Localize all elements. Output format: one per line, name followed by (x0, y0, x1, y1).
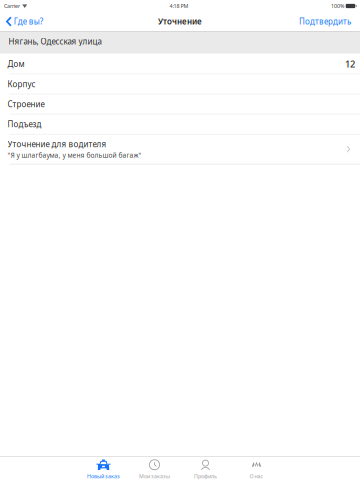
staticText: Профиль (194, 473, 217, 480)
button[interactable]: Мои заказы (129, 457, 180, 480)
staticText: Подъезд (7, 119, 41, 129)
button[interactable]: О нас (231, 457, 282, 480)
button[interactable]: Корпус (0, 74, 360, 94)
button[interactable]: Дом (0, 54, 360, 74)
staticText: Подтвердить (299, 16, 351, 27)
staticText: Корпус (7, 79, 35, 89)
staticText: Мои заказы (139, 473, 170, 480)
staticText: "Я у шлагбаума, у меня большой багаж" (7, 151, 141, 160)
staticText: Уточнение для водителя (7, 139, 106, 149)
staticText: О нас (249, 473, 263, 480)
button[interactable]: Подтвердить (290, 12, 360, 31)
staticText: Строение (7, 99, 44, 109)
button[interactable]: Профиль (180, 457, 231, 480)
button[interactable]: Подъезд (0, 115, 360, 134)
button[interactable]: Где вы? (0, 12, 49, 31)
button[interactable]: Строение (0, 94, 360, 114)
staticText: Carrier (4, 2, 20, 10)
staticText: Где вы? (14, 16, 43, 27)
staticText: 4:18 PM (169, 2, 188, 10)
button[interactable]: Уточнение для водителя (0, 135, 360, 164)
staticText: Новый заказ (87, 473, 120, 480)
staticText: 100% (331, 2, 344, 10)
staticText: Нягань, Одесская улица (8, 36, 101, 47)
staticText: 12 (345, 58, 355, 70)
button[interactable]: Новый заказ (78, 457, 129, 480)
staticText: Дом (7, 59, 24, 69)
staticText: Уточнение (158, 16, 202, 27)
